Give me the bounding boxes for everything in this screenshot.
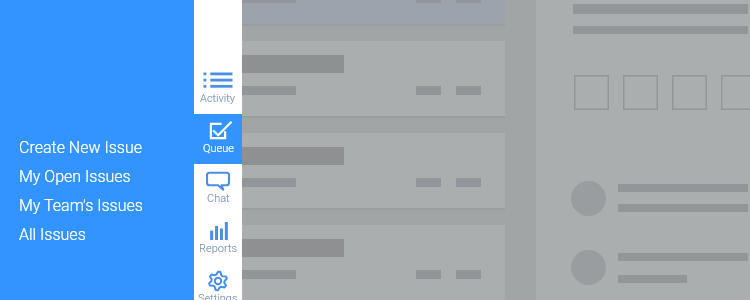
staticText: My Open Issues bbox=[19, 167, 131, 186]
staticText: Activity bbox=[200, 92, 236, 105]
button[interactable]: Settings bbox=[194, 264, 242, 300]
staticText: All Issues bbox=[19, 225, 86, 244]
button[interactable]: My Open Issues bbox=[0, 162, 194, 191]
staticText: Queue bbox=[203, 142, 234, 155]
button[interactable] bbox=[0, 225, 505, 300]
button[interactable]: Reports bbox=[194, 214, 242, 264]
staticText: Reports bbox=[199, 242, 238, 255]
button[interactable]: Activity bbox=[194, 64, 242, 114]
staticText: Settings bbox=[198, 292, 238, 300]
button[interactable] bbox=[0, 0, 505, 25]
staticText: Chat bbox=[207, 192, 230, 205]
staticText: Create New Issue bbox=[19, 138, 142, 157]
button[interactable] bbox=[0, 133, 505, 209]
button[interactable]: Queue bbox=[194, 114, 242, 164]
button[interactable] bbox=[0, 41, 505, 117]
button[interactable]: My Team's Issues bbox=[0, 191, 194, 220]
button[interactable]: Chat bbox=[194, 164, 242, 214]
staticText: My Team's Issues bbox=[19, 196, 143, 215]
button[interactable]: All Issues bbox=[0, 220, 194, 249]
button[interactable]: Create New Issue bbox=[0, 133, 194, 162]
